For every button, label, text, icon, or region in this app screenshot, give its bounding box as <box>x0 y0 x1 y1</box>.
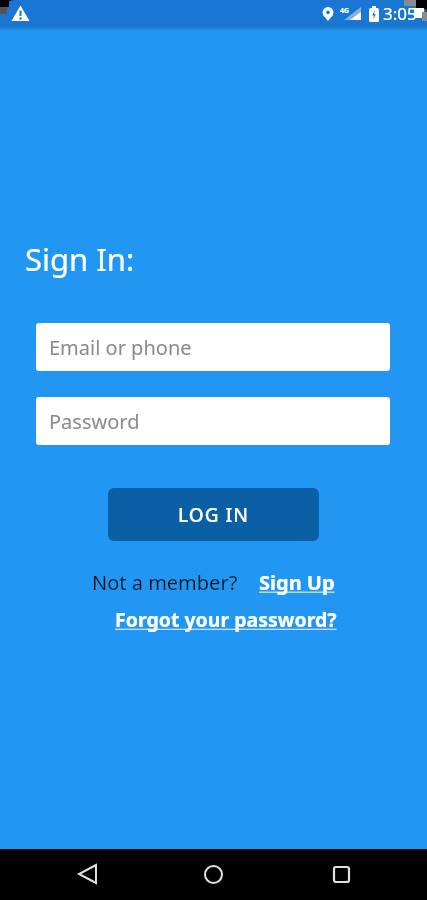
button[interactable] <box>200 862 226 886</box>
button[interactable]: Email or phone <box>36 323 390 371</box>
button[interactable]: Sign Up <box>259 569 335 596</box>
staticText: Sign In: <box>25 238 135 280</box>
staticText: Password <box>49 408 140 435</box>
staticText: Not a member? <box>92 569 238 596</box>
button[interactable]: Forgot your password? <box>115 606 337 633</box>
staticText: LOG IN <box>178 502 249 528</box>
button[interactable]: LOG IN <box>108 488 319 541</box>
staticText: Email or phone <box>49 334 192 361</box>
staticText: 4G <box>340 6 350 16</box>
button[interactable] <box>328 862 354 886</box>
button[interactable]: Password <box>36 397 390 445</box>
button[interactable] <box>74 862 100 886</box>
staticText: 3:05 <box>383 2 417 25</box>
